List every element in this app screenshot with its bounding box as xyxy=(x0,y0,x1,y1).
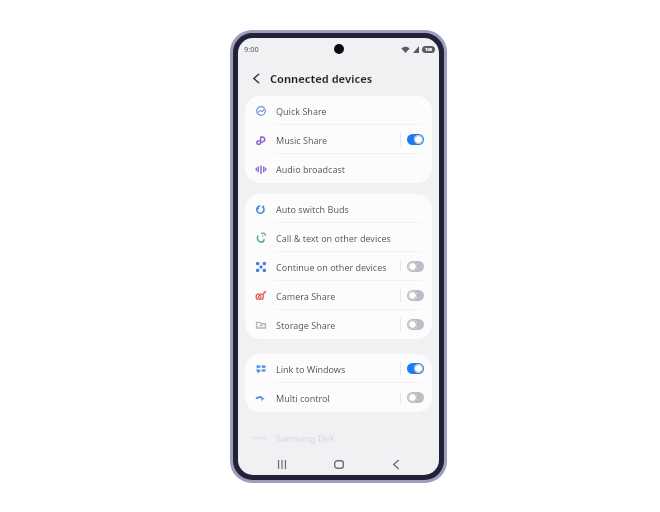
button[interactable]: Back xyxy=(384,454,408,475)
staticText: Storage Share xyxy=(276,319,336,331)
staticText: Samsung DeX xyxy=(276,432,335,444)
staticText: Music Share xyxy=(276,134,328,146)
button[interactable]: Quick Share xyxy=(245,96,432,125)
button[interactable]: Toggle on xyxy=(407,134,424,145)
staticText: Audio broadcast xyxy=(276,163,345,175)
button[interactable]: Continue on other devices xyxy=(245,252,432,281)
button[interactable]: Toggle on xyxy=(407,363,424,374)
button[interactable]: Storage Share xyxy=(245,310,432,339)
button[interactable]: Camera Share xyxy=(245,281,432,310)
button[interactable]: Toggle off xyxy=(407,319,424,330)
button[interactable]: Home xyxy=(327,454,351,475)
button[interactable]: Call & text on other devices xyxy=(245,223,432,252)
button[interactable]: Audio broadcast xyxy=(245,154,432,183)
staticText: 9:00 xyxy=(244,44,259,54)
staticText: Quick Share xyxy=(276,105,327,117)
staticText: Call & text on other devices xyxy=(276,232,391,244)
staticText: 100 xyxy=(425,47,433,53)
staticText: Multi control xyxy=(276,392,330,404)
staticText: Continue on other devices xyxy=(276,261,387,273)
button[interactable]: Recents xyxy=(270,454,294,475)
button[interactable]: Auto switch Buds xyxy=(245,194,432,223)
button[interactable]: Link to Windows xyxy=(245,354,432,383)
button[interactable]: Music Share xyxy=(245,125,432,154)
button[interactable]: Back xyxy=(248,70,264,86)
staticText: Camera Share xyxy=(276,290,336,302)
staticText: Auto switch Buds xyxy=(276,203,349,215)
button[interactable]: Toggle off xyxy=(407,392,424,403)
staticText: Link to Windows xyxy=(276,363,346,375)
button[interactable]: Toggle off xyxy=(407,261,424,272)
button[interactable]: Toggle off xyxy=(407,290,424,301)
button[interactable]: Multi control xyxy=(245,383,432,412)
staticText: Connected devices xyxy=(270,71,373,86)
